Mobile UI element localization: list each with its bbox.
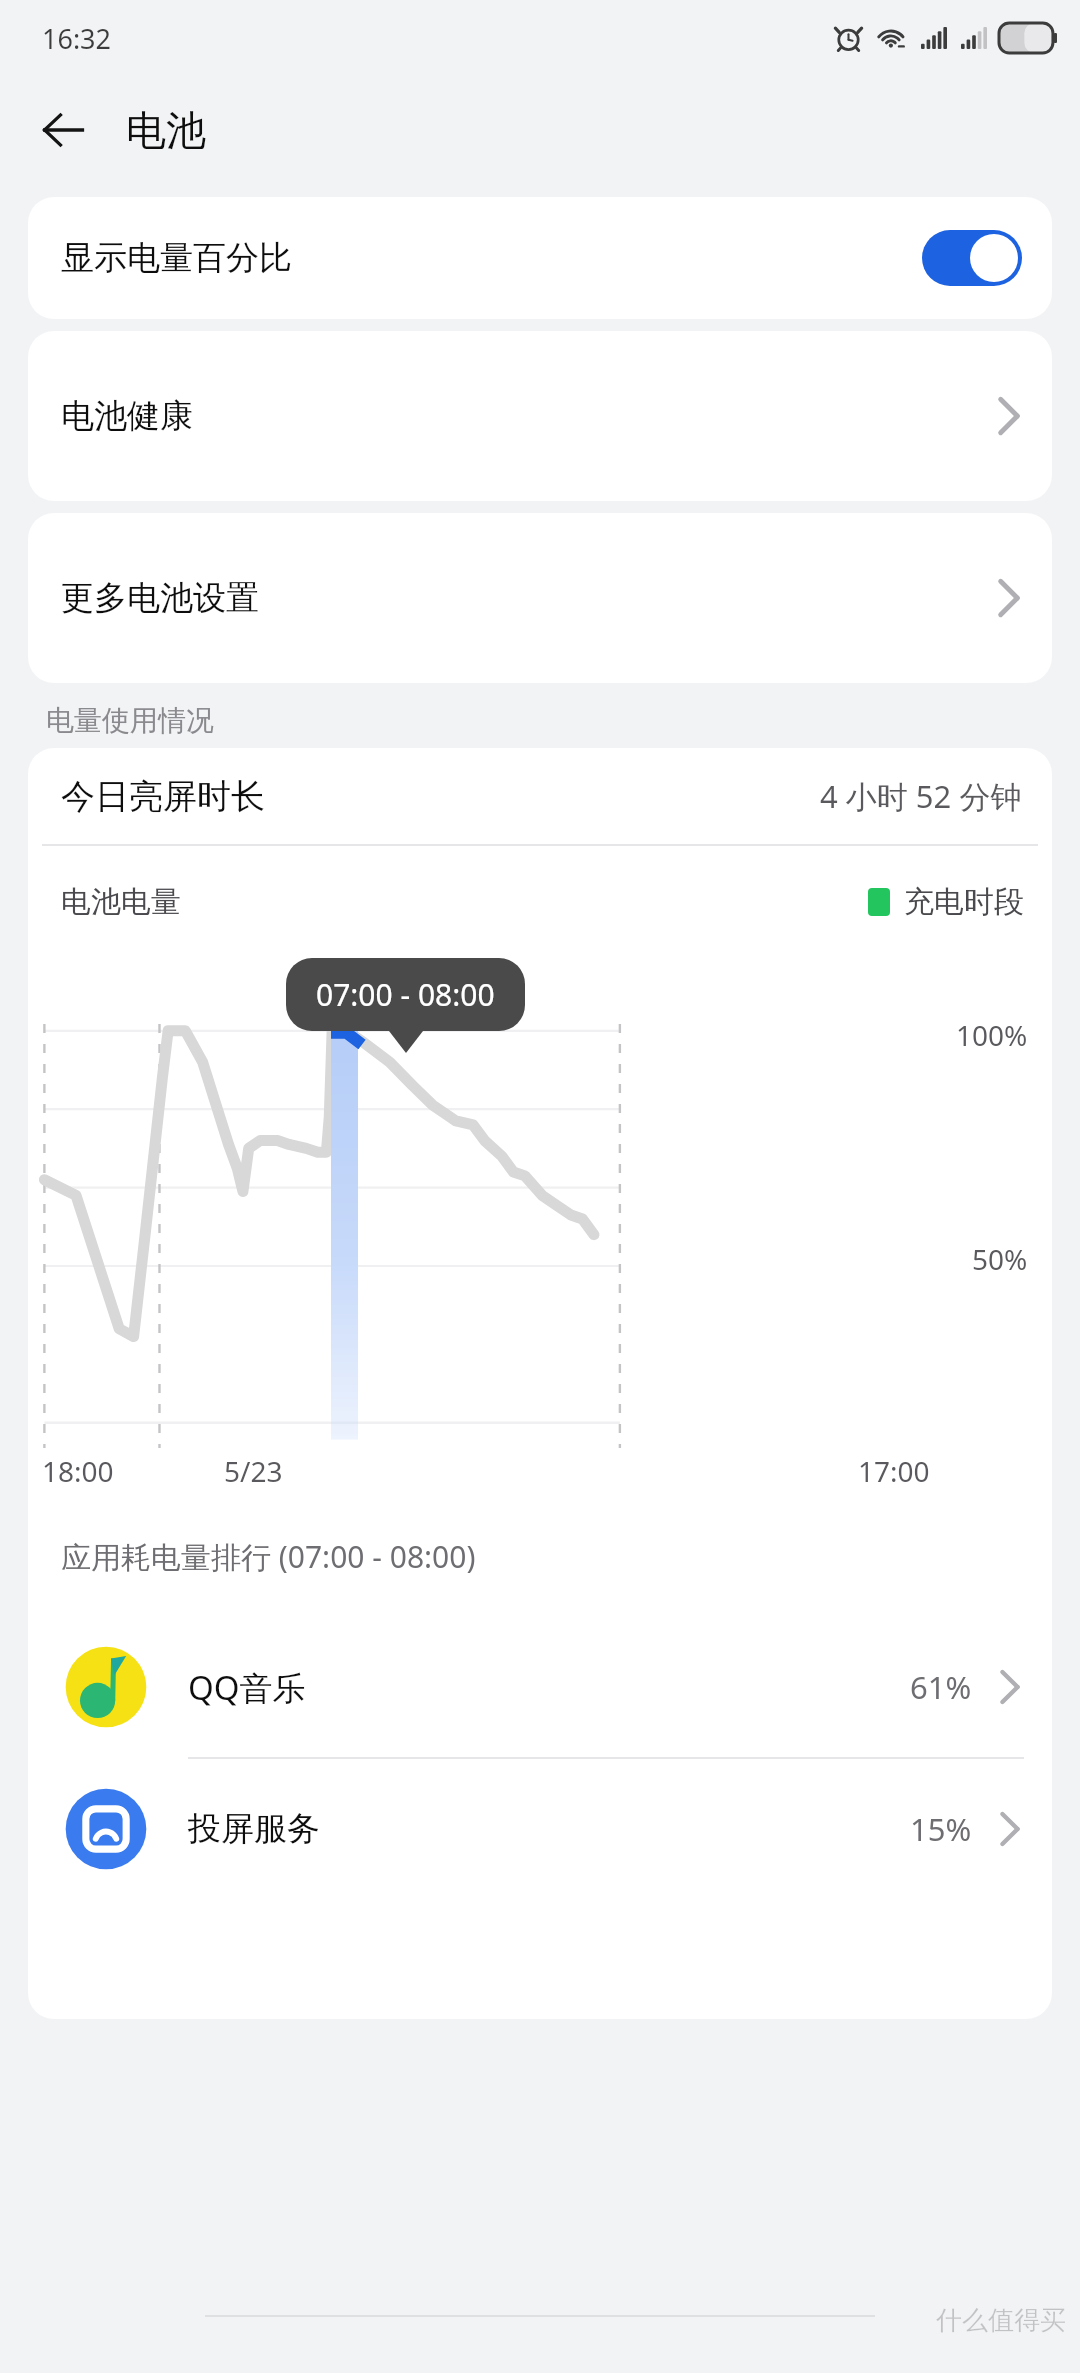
staticText: 什么值得买 — [936, 2304, 1066, 2337]
staticText: 电池健康 — [61, 395, 193, 437]
button[interactable]: 显示电量百分比 — [28, 197, 1052, 319]
staticText: 显示电量百分比 — [61, 237, 292, 279]
staticText: 61% — [910, 1666, 972, 1708]
staticText: 17:00 — [858, 1452, 930, 1490]
button[interactable]: 电池健康 — [28, 331, 1052, 501]
staticText: 电量使用情况 — [46, 703, 214, 738]
staticText: 16:32 — [42, 20, 112, 57]
staticText: 4 小时 52 分钟 — [820, 775, 1022, 817]
button[interactable]: 投屏服务 — [28, 1759, 1052, 1899]
staticText: 15% — [910, 1808, 972, 1850]
staticText: 18:00 — [42, 1452, 114, 1490]
staticText: 更多电池设置 — [61, 577, 259, 619]
button[interactable]: QQ音乐 — [28, 1617, 1052, 1757]
staticText: 充电时段 — [904, 883, 1024, 921]
staticText: 电池 — [126, 105, 206, 155]
button[interactable]: Back — [28, 94, 100, 166]
staticText: 07:00 - 08:00 — [316, 974, 495, 1015]
button[interactable]: 今日亮屏时长 — [28, 748, 1052, 844]
staticText: 应用耗电量排行 (07:00 - 08:00) — [61, 1536, 476, 1577]
button[interactable]: 更多电池设置 — [28, 513, 1052, 683]
staticText: 100% — [956, 1016, 1028, 1054]
staticText: 投屏服务 — [188, 1808, 320, 1850]
staticText: 今日亮屏时长 — [61, 775, 265, 818]
staticText: 电池电量 — [61, 883, 181, 921]
staticText: 5/23 — [224, 1452, 283, 1490]
staticText: QQ音乐 — [188, 1665, 306, 1710]
staticText: 50% — [972, 1240, 1028, 1278]
